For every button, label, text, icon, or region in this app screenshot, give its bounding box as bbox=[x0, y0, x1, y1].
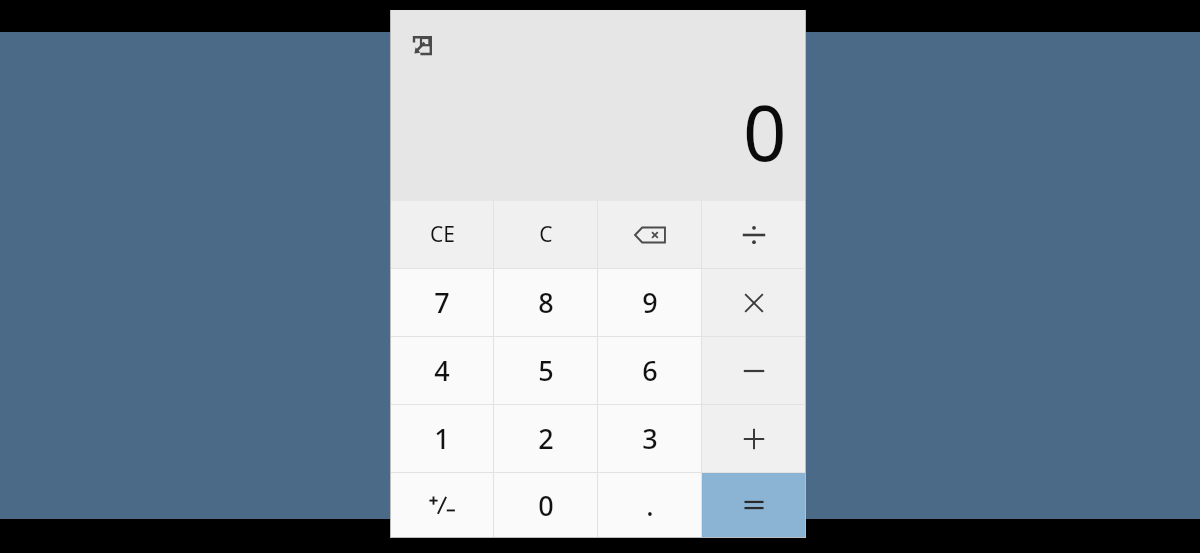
staticText: 7 bbox=[434, 284, 450, 321]
button[interactable]: Multiply bbox=[702, 269, 805, 336]
button[interactable]: 3 bbox=[598, 405, 701, 472]
staticText: 9 bbox=[642, 284, 658, 321]
button[interactable]: 6 bbox=[598, 337, 701, 404]
staticText: CE bbox=[430, 220, 455, 249]
button[interactable]: 2 bbox=[494, 405, 597, 472]
button[interactable]: Divide bbox=[702, 201, 805, 268]
button[interactable]: 0 bbox=[494, 473, 597, 537]
button[interactable]: Backspace bbox=[598, 201, 701, 268]
staticText: 6 bbox=[642, 352, 658, 389]
button[interactable]: Plus minus bbox=[391, 473, 493, 537]
staticText: C bbox=[539, 220, 553, 249]
staticText: 3 bbox=[642, 420, 658, 457]
staticText: 5 bbox=[538, 352, 554, 389]
staticText: 2 bbox=[538, 420, 554, 457]
staticText: 0 bbox=[538, 487, 554, 524]
button[interactable]: 4 bbox=[391, 337, 493, 404]
button[interactable]: Equals bbox=[702, 473, 805, 537]
button[interactable]: CE bbox=[391, 201, 493, 268]
button[interactable]: Subtract bbox=[702, 337, 805, 404]
button[interactable]: 5 bbox=[494, 337, 597, 404]
button[interactable]: Add bbox=[702, 405, 805, 472]
button[interactable]: 1 bbox=[391, 405, 493, 472]
staticText: 8 bbox=[538, 284, 554, 321]
staticText: 1 bbox=[434, 420, 450, 457]
button[interactable]: . bbox=[598, 473, 701, 537]
button[interactable]: 7 bbox=[391, 269, 493, 336]
staticText: 0 bbox=[743, 80, 787, 184]
button[interactable]: 9 bbox=[598, 269, 701, 336]
staticText: 4 bbox=[434, 352, 450, 389]
button[interactable]: 8 bbox=[494, 269, 597, 336]
button[interactable]: Toggle size bbox=[407, 31, 437, 61]
button[interactable]: C bbox=[494, 201, 597, 268]
staticText: . bbox=[646, 487, 654, 524]
